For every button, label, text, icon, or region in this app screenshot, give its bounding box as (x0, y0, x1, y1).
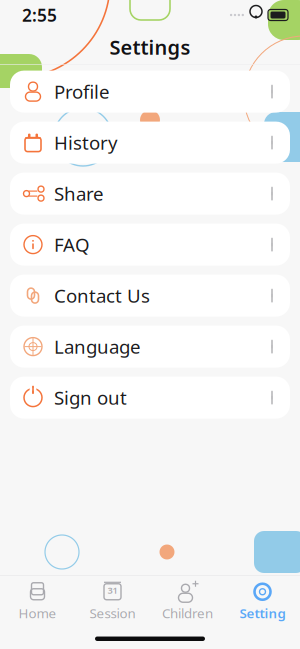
staticText: Language (54, 334, 141, 359)
staticText: Children (162, 604, 213, 622)
button[interactable]: 31 (75, 575, 150, 622)
button[interactable]: History (10, 122, 290, 164)
staticText: Sign out (54, 385, 127, 410)
button[interactable]: Profile (10, 71, 290, 113)
staticText: FAQ (54, 232, 90, 257)
staticText: Contact Us (54, 283, 150, 308)
button[interactable]: Sign out (10, 377, 290, 419)
staticText: 31 (107, 584, 117, 596)
button[interactable]: Language (10, 326, 290, 368)
staticText: 2:55 (22, 3, 57, 26)
button[interactable]: Home (0, 575, 75, 622)
staticText: Home (18, 604, 56, 622)
staticText: Profile (54, 79, 110, 104)
staticText: Session (89, 604, 135, 622)
button[interactable]: FAQ (10, 224, 290, 266)
staticText: Share (54, 181, 104, 206)
staticText: Setting (239, 604, 285, 622)
staticText: Settings (109, 34, 190, 60)
button[interactable]: Setting (225, 575, 300, 622)
button[interactable]: Share (10, 173, 290, 215)
button[interactable]: Children (150, 575, 225, 622)
staticText: History (54, 130, 118, 155)
button[interactable]: Contact Us (10, 275, 290, 317)
